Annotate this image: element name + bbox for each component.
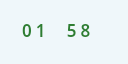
staticText: 01 58 xyxy=(22,19,95,42)
